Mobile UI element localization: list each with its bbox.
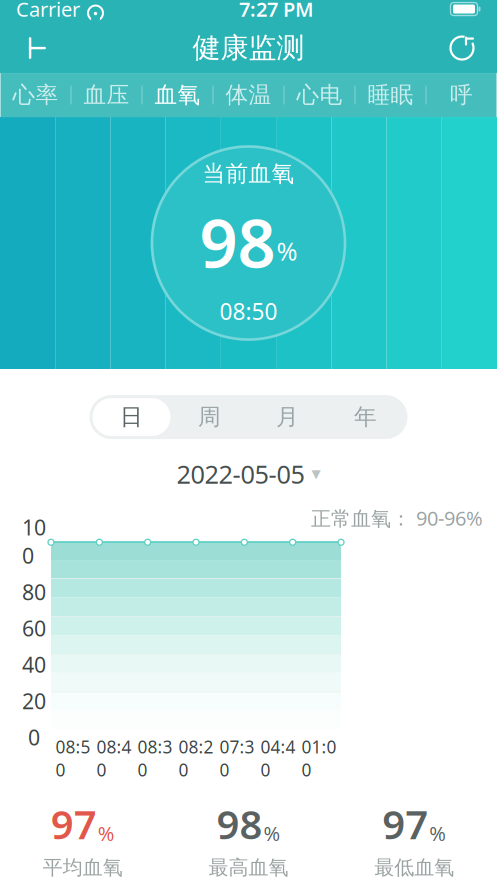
button[interactable]: 心电 [284, 73, 354, 117]
button[interactable]: 血氧 [142, 73, 212, 117]
button[interactable]: 年 [326, 398, 404, 436]
staticText: 正常血氧： 90-96% [311, 505, 483, 531]
staticText: 心率 [12, 81, 58, 109]
button[interactable]: 周 [170, 398, 248, 436]
staticText: 血压 [83, 81, 129, 109]
staticText: 健康监测 [192, 31, 304, 65]
staticText: ▼ [311, 467, 320, 481]
staticText: 月 [276, 403, 299, 431]
staticText: 0 [28, 723, 40, 751]
staticText: 08:50 [55, 735, 90, 781]
staticText: 100 [22, 513, 46, 570]
staticText: 40 [22, 650, 46, 679]
button[interactable]: 体温 [213, 73, 283, 117]
staticText: 体温 [225, 81, 271, 109]
staticText: % [429, 820, 446, 846]
staticText: 97 [51, 797, 97, 850]
staticText: 04:40 [260, 735, 295, 781]
staticText: 年 [354, 403, 377, 431]
staticText: 01:00 [301, 735, 336, 781]
staticText: 周 [198, 403, 221, 431]
button[interactable]: 睡眠 [355, 73, 425, 117]
staticText: 7:27 PM [239, 0, 314, 22]
staticText: 最低血氧 [374, 855, 454, 880]
staticText: 心电 [296, 81, 342, 109]
button[interactable]: 呼 [426, 73, 496, 117]
staticText: 日 [120, 403, 143, 431]
staticText: 最高血氧 [208, 855, 288, 880]
staticText: 血氧 [154, 81, 200, 109]
staticText: % [98, 820, 115, 846]
staticText: 60 [22, 614, 46, 642]
staticText: 20 [22, 687, 46, 715]
staticText: % [263, 820, 280, 846]
staticText: 80 [22, 578, 46, 606]
staticText: 当前血氧 [202, 160, 294, 188]
staticText: 08:30 [137, 735, 172, 781]
staticText: 97 [382, 797, 428, 850]
button[interactable]: Back [8, 25, 62, 71]
staticText: 睡眠 [367, 81, 413, 109]
button[interactable]: Refresh [435, 25, 489, 71]
staticText: Carrier [16, 0, 80, 22]
button[interactable]: 日 [92, 398, 170, 436]
button[interactable]: 血压 [71, 73, 141, 117]
staticText: 98 [216, 797, 262, 850]
staticText: 08:40 [96, 735, 131, 781]
button[interactable]: 2022-05-05 [166, 451, 330, 497]
button[interactable]: 心率 [0, 73, 70, 117]
staticText: 08:20 [178, 735, 213, 781]
staticText: 07:30 [219, 735, 254, 781]
staticText: 98 [199, 198, 275, 286]
staticText: 平均血氧 [43, 855, 123, 880]
staticText: 08:50 [219, 296, 277, 326]
staticText: 呼 [450, 81, 473, 109]
button[interactable]: 月 [248, 398, 326, 436]
staticText: 2022-05-05 [176, 457, 304, 491]
staticText: % [276, 234, 297, 268]
